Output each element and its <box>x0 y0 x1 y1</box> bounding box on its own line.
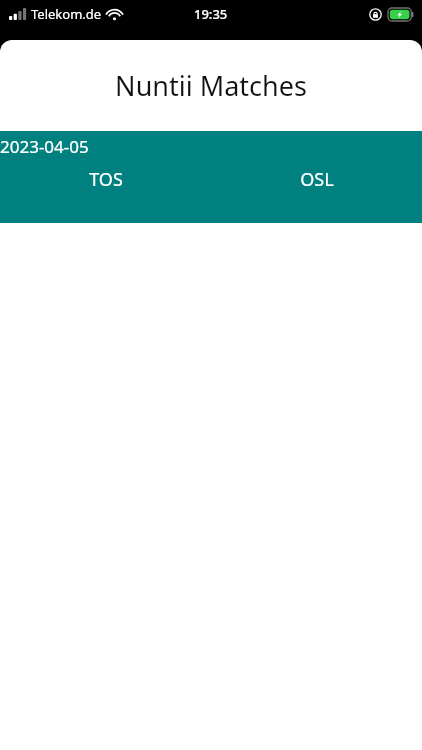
staticText: 2023-04-05 <box>0 135 89 158</box>
staticText: 19:35 <box>194 5 228 23</box>
staticText: Nuntii Matches <box>115 67 307 104</box>
staticText: TOS <box>89 167 123 192</box>
button[interactable]: 2023-04-05 <box>0 131 422 223</box>
other: Battery charging <box>388 8 414 21</box>
staticText: Telekom.de <box>31 5 102 23</box>
staticText: OSL <box>300 167 334 192</box>
other: Rotation lock <box>369 8 382 21</box>
